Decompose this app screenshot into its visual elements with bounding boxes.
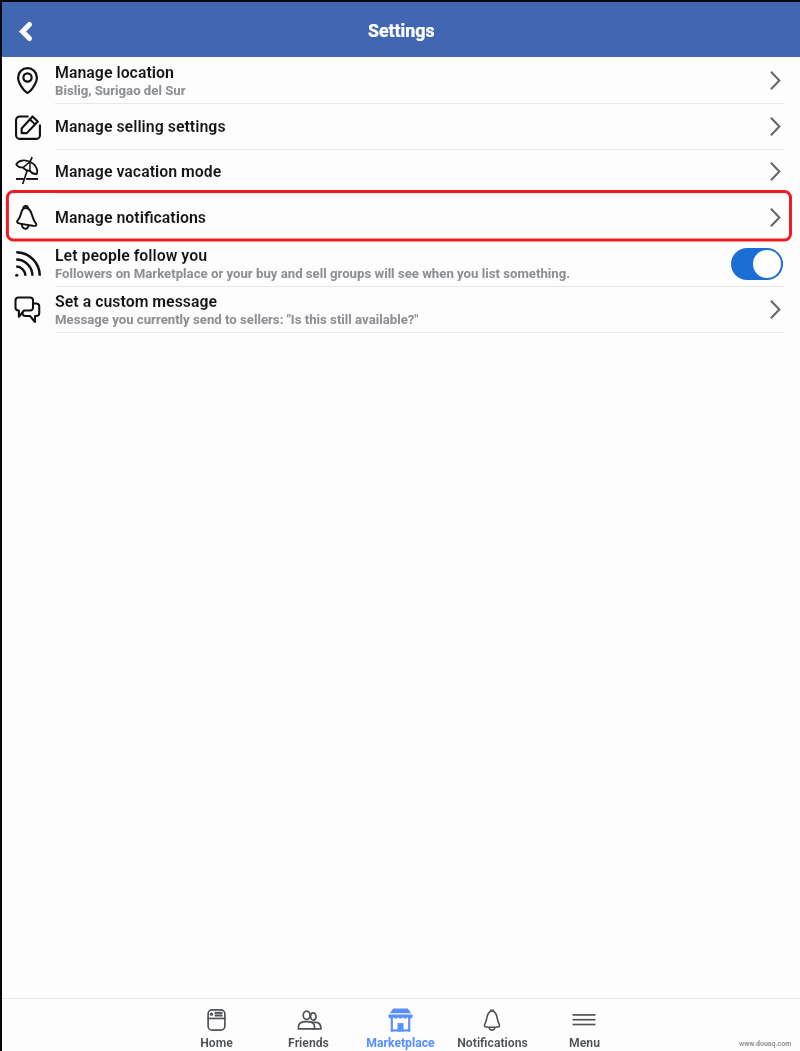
button[interactable]: Home (170, 999, 262, 1051)
staticText: Bislig, Surigao del Sur (55, 83, 186, 98)
staticText: Marketplace (366, 1036, 435, 1050)
staticText: Manage vacation mode (55, 162, 222, 181)
staticText: www.douaq.com (739, 1040, 792, 1048)
staticText: Settings (368, 20, 435, 41)
staticText: Set a custom message (55, 292, 218, 311)
staticText: Message you currently send to sellers: "… (55, 312, 419, 327)
staticText: Let people follow you (55, 246, 208, 265)
button[interactable]: Manage location (0, 57, 800, 103)
button[interactable]: Back (0, 2, 50, 57)
button[interactable]: Marketplace (354, 999, 446, 1051)
staticText: Menu (569, 1036, 600, 1050)
button[interactable]: Notifications (446, 999, 538, 1051)
button[interactable]: Friends (262, 999, 354, 1051)
button[interactable]: Manage selling settings (0, 104, 800, 149)
button[interactable]: Let people follow you (0, 241, 800, 286)
staticText: Manage selling settings (55, 117, 226, 136)
button[interactable]: Set a custom message (0, 287, 800, 332)
staticText: Manage notifications (55, 208, 206, 227)
button[interactable]: Menu (538, 999, 630, 1051)
staticText: Friends (288, 1036, 329, 1050)
button[interactable]: Manage notifications (0, 194, 800, 241)
button[interactable]: Let people follow you (731, 248, 783, 280)
button[interactable]: Manage vacation mode (0, 150, 800, 193)
staticText: Manage location (55, 63, 174, 82)
staticText: Home (200, 1036, 233, 1050)
staticText: Notifications (457, 1036, 528, 1050)
staticText: Followers on Marketplace or your buy and… (55, 266, 571, 281)
